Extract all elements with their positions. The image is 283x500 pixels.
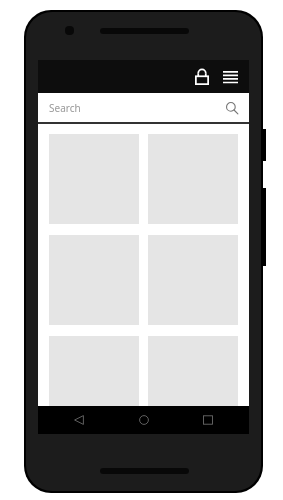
button[interactable]: Home xyxy=(132,408,156,432)
button[interactable] xyxy=(49,336,139,426)
button[interactable]: Recents xyxy=(196,408,220,432)
button[interactable]: Lock xyxy=(186,60,218,93)
button[interactable] xyxy=(148,336,238,426)
button[interactable]: Search xyxy=(38,93,249,122)
other: Search xyxy=(224,100,240,116)
button[interactable]: Menu xyxy=(218,60,243,93)
staticText: Search xyxy=(49,101,81,115)
button[interactable]: Back xyxy=(67,408,91,432)
